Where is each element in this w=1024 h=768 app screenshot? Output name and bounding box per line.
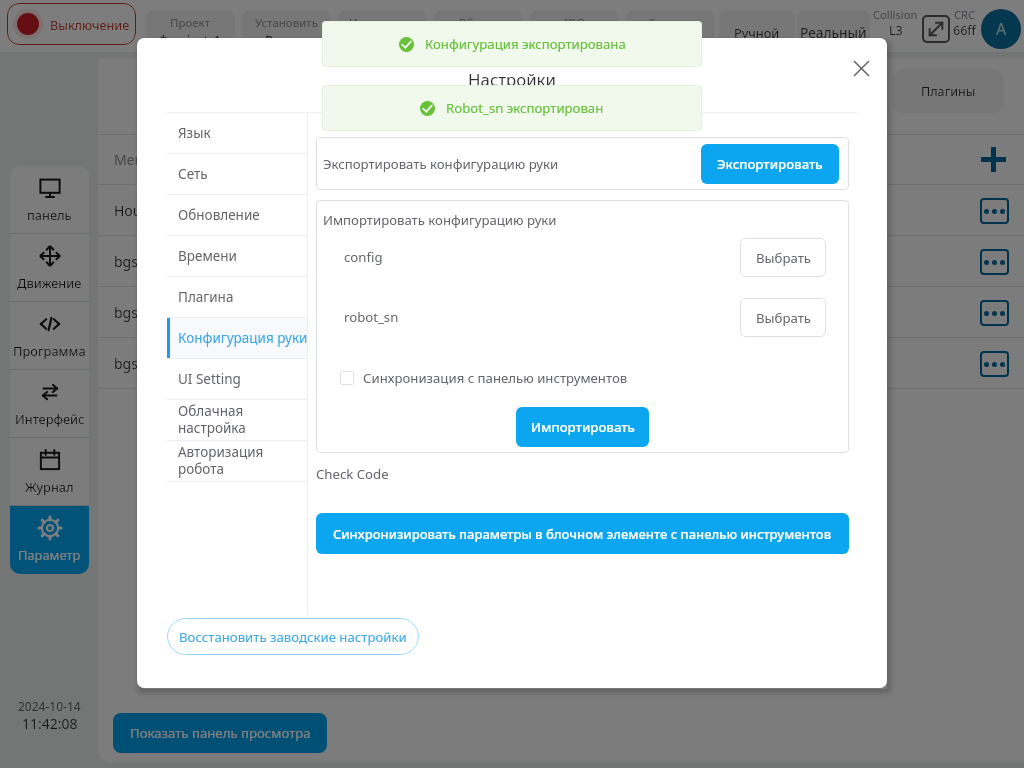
staticText: UI Setting [178,370,241,388]
staticText: CRC [954,7,976,22]
button[interactable]: Установить [242,10,331,54]
button[interactable]: Импортировать [516,407,649,447]
button[interactable]: Реальный [797,10,870,54]
staticText: *project_1 [160,32,221,49]
staticText: bgs2 [114,303,146,322]
staticText: Синхронизировать параметры в блочном эле… [333,525,832,543]
staticText: L3 [889,22,903,39]
staticText: robot_sn [344,308,399,326]
staticText: 11:42:08 [22,714,78,733]
button[interactable]: Обновление [167,194,307,235]
staticText: Интерфейс [15,410,85,428]
staticText: Конфигурация экспортирована [425,35,626,53]
staticText: Плагины [921,83,976,100]
staticText: Движение [17,274,82,292]
staticText: Синхронизация с панелью инструментов [363,369,628,387]
staticText: Импортировать [531,418,635,436]
staticText: Облачная настройка [178,402,246,437]
staticText: Вертик [265,32,309,49]
staticText: Параметр [18,546,81,564]
button[interactable]: A [981,9,1021,49]
button[interactable]: Сеть [167,153,307,194]
staticText: Выбрать [756,309,811,327]
staticText: Скорост [648,15,693,31]
button[interactable]: More options [980,351,1009,377]
button[interactable]: Sync with toolbar checkbox [340,371,354,385]
staticText: 66ff [953,22,976,39]
button[interactable]: Восстановить заводские настройки [167,618,419,655]
button[interactable]: Интерфейс [10,370,89,438]
staticText: Установить [255,15,318,31]
staticText: Журнал [25,478,74,496]
staticText: Обновление [178,206,260,224]
staticText: Восстановить заводские настройки [179,628,407,646]
button[interactable]: Выбрать [740,298,826,337]
staticText: Ручной [734,24,780,41]
staticText: Плагина [178,288,234,306]
staticText: Реальный [800,23,867,42]
button[interactable]: Объект [434,10,523,54]
button[interactable]: Ручной [719,10,795,54]
button[interactable]: Fullscreen [922,15,950,43]
staticText: Инструмент [349,15,416,31]
button[interactable]: Программа [10,302,89,370]
button[interactable]: Конфигурация руки [167,317,307,358]
button[interactable]: Синхронизировать параметры в блочном эле… [316,513,849,554]
button[interactable]: Язык [167,112,307,153]
staticText: Объект [458,15,499,31]
staticText: Экспортировать конфигурацию руки [323,155,559,173]
staticText: Выключение [50,16,130,33]
staticText: config [344,248,383,266]
button[interactable]: Инструмент [338,10,427,54]
button[interactable]: Авторизация робота [167,440,307,481]
button[interactable]: Проект [146,10,235,54]
button[interactable]: More options [980,198,1009,224]
staticText: bgs1 [114,252,146,271]
button[interactable]: панель [10,166,89,234]
button[interactable]: Плагины [892,69,1004,113]
button[interactable]: Экспортировать [701,144,839,184]
button[interactable]: Параметр [10,506,89,574]
button[interactable]: UI Setting [167,358,307,399]
staticText: IDO [564,15,586,31]
staticText: Collision [873,7,918,22]
button[interactable]: Времени [167,235,307,276]
staticText: Импортировать конфигурацию руки [323,211,557,229]
staticText: - [573,32,577,49]
staticText: Программа [13,342,86,360]
staticText: Настройки [137,68,887,91]
staticText: Сеть [178,165,208,183]
button[interactable]: Add [977,143,1010,176]
staticText: Выбрать [756,249,811,267]
staticText: Меню [114,150,155,169]
staticText: Авторизация робота [178,443,264,478]
staticText: A [996,18,1007,40]
staticText: панель [27,206,72,224]
staticText: Check Code [316,465,389,483]
button[interactable]: Выбрать [740,238,826,277]
button[interactable]: IDO [530,10,619,54]
staticText: Времени [178,247,237,265]
button[interactable]: Плагина [167,276,307,317]
staticText: bgs3 [114,354,146,373]
button[interactable]: Журнал [10,438,89,506]
button[interactable]: Close [845,52,877,84]
button[interactable]: More options [980,300,1009,326]
staticText: Robot_sn экспортирован [446,99,604,117]
button[interactable]: Выключение [7,3,136,45]
staticText: Язык [178,124,211,142]
button[interactable]: More options [980,249,1009,275]
button[interactable]: Скорост [626,10,715,54]
button[interactable]: Облачная настройка [167,399,307,440]
staticText: Экспортировать [717,155,823,173]
staticText: House [114,201,157,220]
staticText: 2024-10-14 [18,698,81,714]
staticText: Проект [170,15,211,31]
staticText: Конфигурация руки [178,329,307,347]
staticText: - [477,32,481,49]
button[interactable]: Движение [10,234,89,302]
staticText: Показать панель просмотра [130,724,311,742]
button[interactable]: Показать панель просмотра [113,713,327,753]
